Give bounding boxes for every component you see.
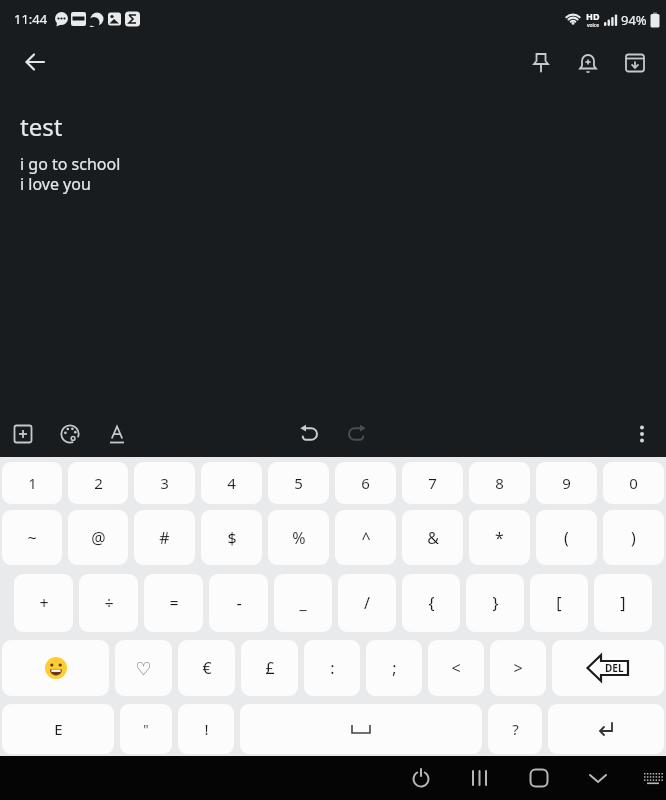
button[interactable]: # — [134, 510, 195, 565]
button[interactable]: ^ — [335, 510, 396, 565]
button[interactable]: ? — [488, 704, 542, 754]
button[interactable]: E — [2, 704, 114, 754]
staticText: HD — [586, 10, 600, 22]
button[interactable] — [2, 640, 109, 696]
staticText: [ — [556, 592, 562, 614]
staticText: < — [451, 657, 461, 679]
button[interactable]: ( — [536, 510, 597, 565]
button[interactable] — [517, 39, 564, 86]
staticText: 94% — [621, 11, 647, 29]
button[interactable]: = — [144, 574, 203, 632]
button[interactable]: ♡ — [115, 640, 172, 696]
staticText: { — [428, 592, 435, 614]
staticText: : — [330, 657, 335, 679]
button[interactable]: 5 — [268, 462, 329, 504]
button[interactable]: _ — [274, 574, 332, 632]
button[interactable]: [ — [530, 574, 588, 632]
button[interactable] — [240, 704, 482, 754]
staticText: ] — [620, 592, 626, 614]
staticText: 0 — [629, 473, 638, 493]
staticText: 3 — [160, 473, 169, 493]
button[interactable] — [11, 38, 59, 86]
staticText: % — [292, 527, 306, 549]
button[interactable]: ÷ — [79, 574, 138, 632]
button[interactable] — [548, 704, 664, 754]
button[interactable]: 1 — [2, 462, 62, 504]
staticText: 1 — [28, 473, 37, 493]
staticText: ^ — [361, 527, 371, 549]
button[interactable]: i go to school i love you — [20, 153, 666, 194]
button[interactable]: 3 — [134, 462, 195, 504]
button[interactable] — [98, 415, 136, 453]
button[interactable] — [287, 412, 331, 456]
button[interactable] — [391, 756, 450, 800]
button[interactable]: 8 — [469, 462, 530, 504]
staticText: ? — [512, 719, 519, 739]
button[interactable]: * — [469, 510, 530, 565]
button[interactable]: 2 — [68, 462, 128, 504]
button[interactable]: £ — [241, 640, 298, 696]
button[interactable]: $ — [201, 510, 262, 565]
staticText: 6 — [361, 473, 370, 493]
staticText: ÷ — [104, 592, 114, 614]
button[interactable] — [335, 412, 379, 456]
staticText: _ — [299, 592, 307, 614]
staticText: * — [495, 527, 504, 549]
staticText: + — [39, 592, 49, 614]
button[interactable] — [611, 39, 658, 86]
staticText: / — [364, 592, 370, 614]
staticText: £ — [265, 657, 275, 679]
staticText: 7 — [428, 473, 437, 493]
staticText: 8 — [495, 473, 504, 493]
button[interactable]: : — [304, 640, 360, 696]
button[interactable]: ] — [594, 574, 652, 632]
button[interactable]: & — [402, 510, 463, 565]
staticText: ( — [564, 527, 569, 549]
button[interactable]: ! — [178, 704, 234, 754]
button[interactable]: 0 — [603, 462, 664, 504]
button[interactable] — [51, 415, 89, 453]
staticText: $ — [227, 527, 237, 549]
button[interactable] — [4, 415, 42, 453]
button[interactable] — [564, 39, 611, 86]
button[interactable]: - — [209, 574, 268, 632]
button[interactable]: 4 — [201, 462, 262, 504]
staticText: ! — [204, 719, 209, 739]
button[interactable]: test — [20, 110, 666, 143]
staticText: ) — [631, 527, 636, 549]
staticText: } — [492, 592, 499, 614]
staticText: DEL — [605, 661, 624, 675]
button[interactable]: % — [268, 510, 329, 565]
staticText: > — [513, 657, 523, 679]
button[interactable]: + — [14, 574, 73, 632]
button[interactable]: < — [428, 640, 484, 696]
button[interactable] — [627, 756, 666, 800]
staticText: - — [236, 592, 242, 614]
button[interactable]: " — [120, 704, 172, 754]
button[interactable] — [568, 756, 627, 800]
button[interactable]: ) — [603, 510, 664, 565]
button[interactable] — [450, 756, 509, 800]
button[interactable]: ~ — [2, 510, 62, 565]
staticText: " — [143, 720, 149, 738]
button[interactable]: DEL — [552, 640, 664, 696]
staticText: voice — [587, 22, 600, 29]
staticText: 2 — [94, 473, 103, 493]
staticText: E — [54, 719, 63, 739]
button[interactable] — [624, 416, 660, 452]
button[interactable]: } — [466, 574, 524, 632]
button[interactable]: @ — [68, 510, 128, 565]
button[interactable]: 6 — [335, 462, 396, 504]
button[interactable]: 9 — [536, 462, 597, 504]
button[interactable] — [509, 756, 568, 800]
button[interactable]: { — [402, 574, 460, 632]
staticText: 9 — [562, 473, 571, 493]
staticText: @ — [91, 527, 106, 549]
button[interactable]: 7 — [402, 462, 463, 504]
staticText: € — [202, 657, 212, 679]
staticText: ; — [392, 657, 397, 679]
button[interactable]: € — [178, 640, 235, 696]
button[interactable]: / — [338, 574, 396, 632]
button[interactable]: > — [490, 640, 546, 696]
button[interactable]: ; — [366, 640, 422, 696]
